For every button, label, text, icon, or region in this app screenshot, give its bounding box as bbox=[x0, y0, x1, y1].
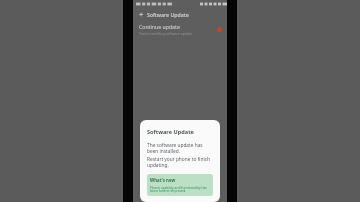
staticText: Software Update bbox=[147, 128, 194, 136]
button[interactable]: Back bbox=[137, 10, 145, 18]
button[interactable]: Continue update bbox=[133, 20, 227, 38]
staticText: Restart your phone to finish updating. bbox=[147, 156, 213, 168]
staticText: Finish installing software update bbox=[139, 31, 193, 36]
staticText: What's new bbox=[150, 177, 176, 183]
staticText: Continue update bbox=[139, 23, 180, 30]
staticText: Software Update bbox=[147, 11, 189, 18]
staticText: The software update has been installed. bbox=[147, 142, 213, 154]
other: Update available bbox=[217, 27, 222, 32]
button[interactable]: What's new bbox=[147, 174, 213, 196]
staticText: Phone usability and functionality has be… bbox=[150, 185, 210, 193]
button[interactable]: Back bbox=[133, 8, 227, 20]
